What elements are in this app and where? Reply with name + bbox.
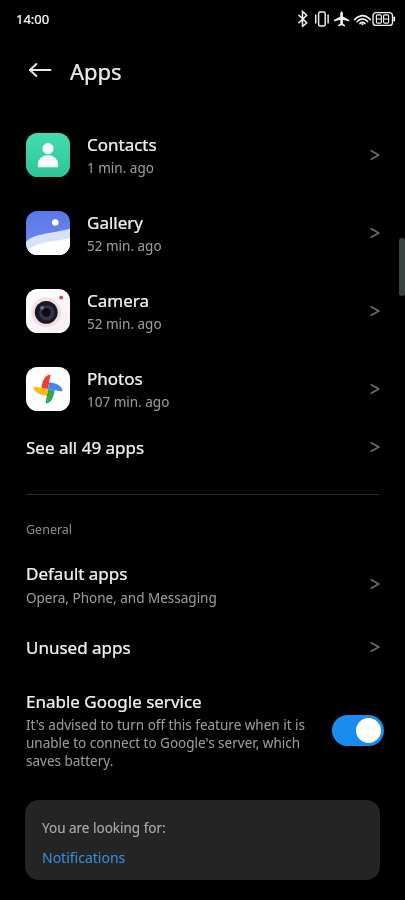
staticText: 14:00 xyxy=(16,10,50,28)
staticText: Gallery xyxy=(87,211,143,234)
staticText: Photos xyxy=(87,367,143,390)
staticText: 107 min. ago xyxy=(87,393,170,411)
staticText: It's advised to turn off this feature wh… xyxy=(26,716,316,770)
button[interactable]: Notifications xyxy=(42,848,126,867)
staticText: 1 min. ago xyxy=(87,159,154,177)
button[interactable]: Default apps xyxy=(0,556,405,612)
staticText: Notifications xyxy=(42,848,126,867)
button[interactable]: Unused apps xyxy=(0,625,405,669)
staticText: See all 49 apps xyxy=(26,436,145,459)
button[interactable]: Photos xyxy=(0,358,405,420)
staticText: 52 min. ago xyxy=(87,237,162,255)
staticText: 52 min. ago xyxy=(87,315,162,333)
staticText: Default apps xyxy=(26,562,128,585)
staticText: Opera, Phone, and Messaging xyxy=(26,589,217,607)
button[interactable]: You are looking for: xyxy=(25,800,380,880)
staticText: Enable Google service xyxy=(26,690,202,713)
button[interactable]: See all 49 apps xyxy=(0,425,405,469)
staticText: You are looking for: xyxy=(42,819,166,837)
button[interactable]: Camera xyxy=(0,280,405,342)
button[interactable]: Enable Google service xyxy=(332,715,384,746)
staticText: Contacts xyxy=(87,133,157,156)
staticText: General xyxy=(26,521,73,538)
button[interactable]: Gallery xyxy=(0,202,405,264)
button[interactable]: Enable Google service xyxy=(0,682,405,778)
staticText: Apps xyxy=(70,56,122,86)
staticText: Unused apps xyxy=(26,636,131,659)
staticText: Camera xyxy=(87,289,149,312)
button[interactable]: Back xyxy=(18,48,62,92)
button[interactable]: Contacts xyxy=(0,124,405,186)
